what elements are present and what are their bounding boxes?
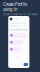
button[interactable]: Continue (24, 63, 28, 66)
staticText: Lorem ipsum dolor sit amet (3, 13, 37, 16)
staticText: Create Profile using in (3, 2, 27, 12)
